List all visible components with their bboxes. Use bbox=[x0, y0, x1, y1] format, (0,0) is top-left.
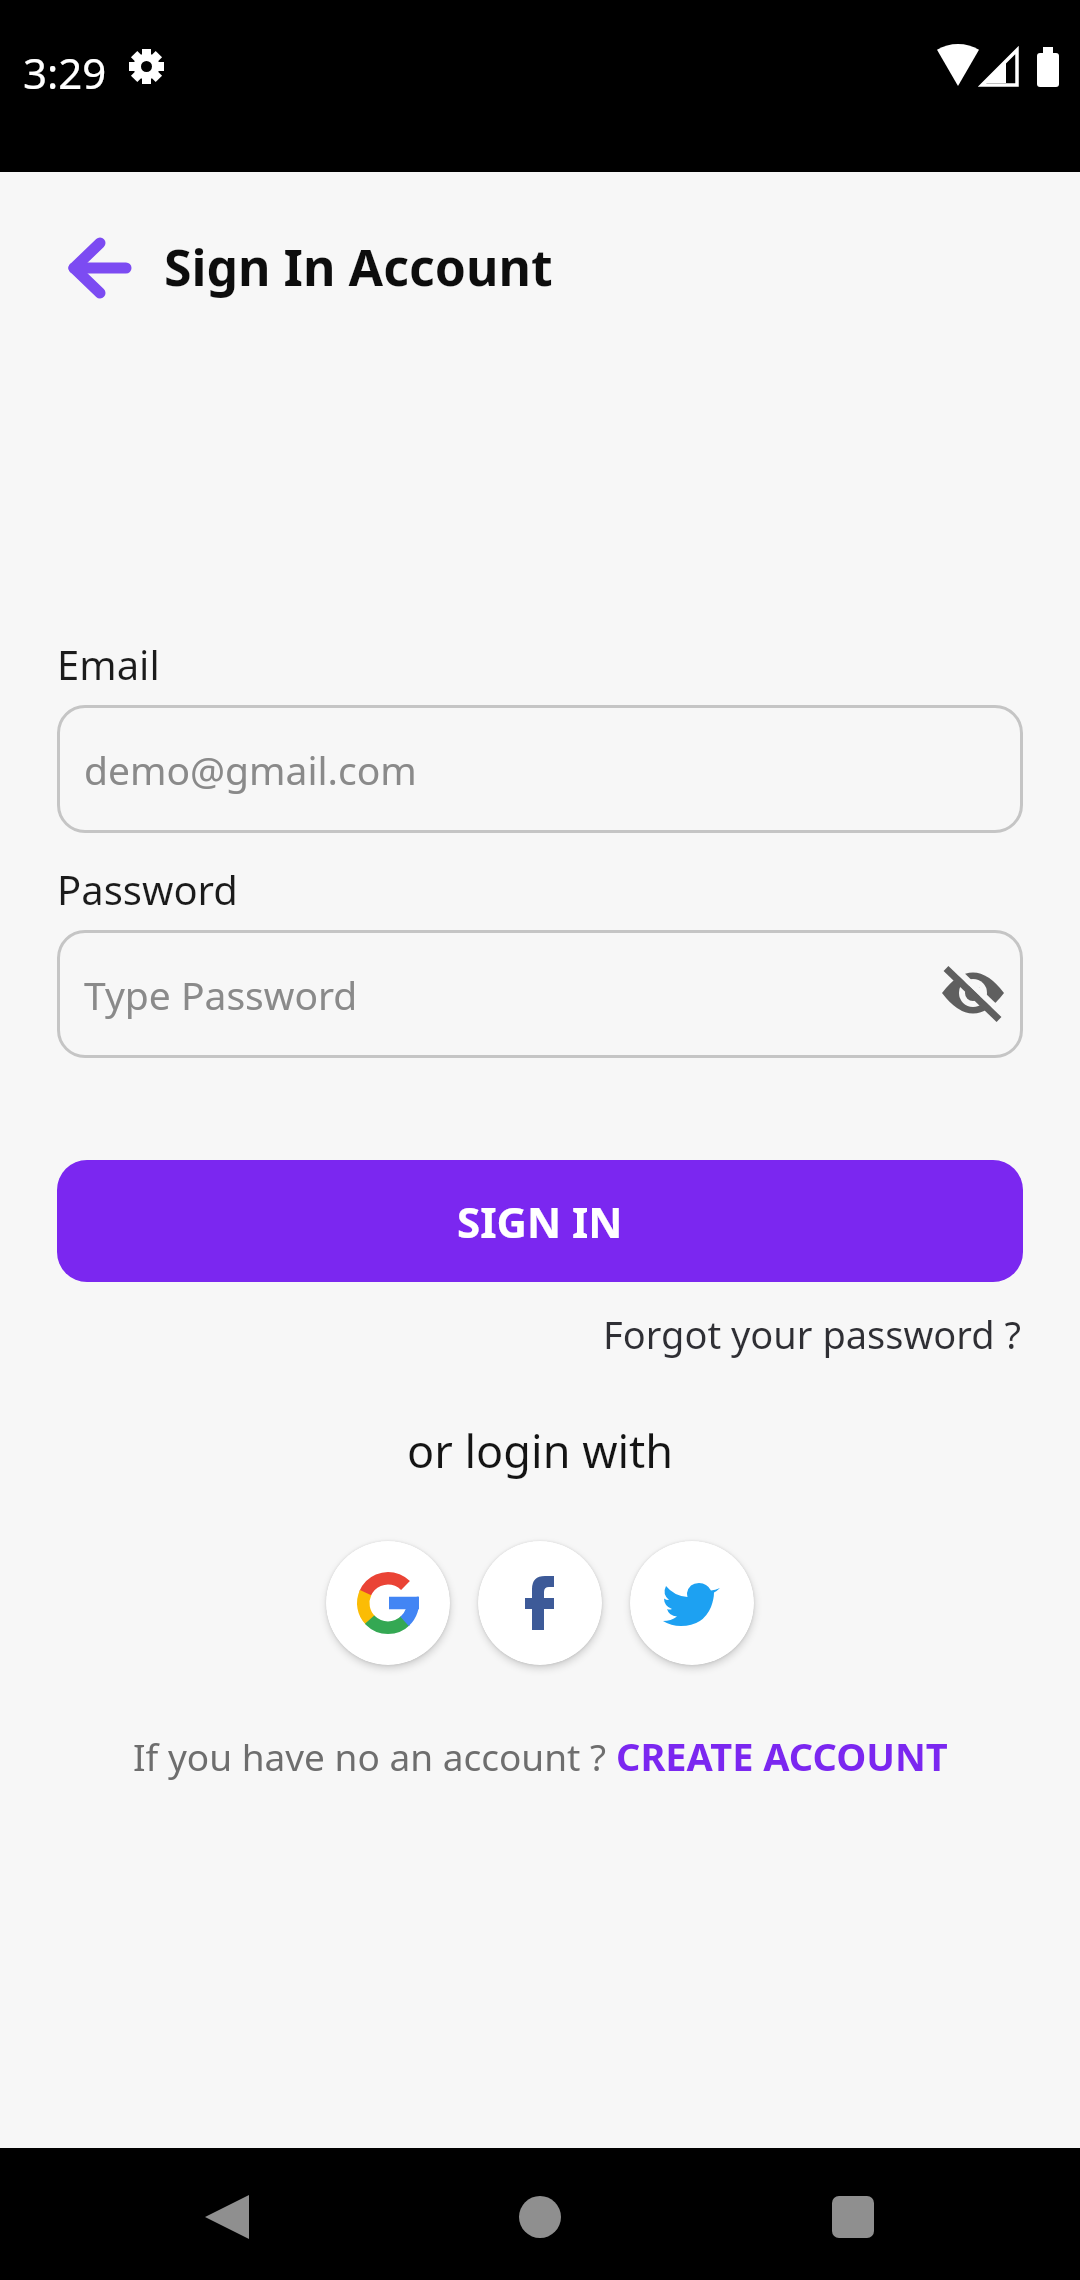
staticText: Password bbox=[57, 862, 238, 912]
staticText: 3:29 bbox=[23, 44, 107, 92]
button[interactable]: CREATE ACCOUNT bbox=[616, 1730, 948, 1782]
staticText: SIGN IN bbox=[457, 1193, 623, 1250]
button[interactable] bbox=[326, 1541, 450, 1665]
staticText: demo@gmail.com bbox=[84, 743, 417, 796]
button[interactable] bbox=[923, 930, 1023, 1058]
button[interactable]: demo@gmail.com bbox=[57, 705, 1023, 833]
button[interactable] bbox=[506, 2183, 574, 2251]
staticText: Email bbox=[57, 637, 160, 687]
button[interactable] bbox=[56, 225, 142, 311]
button[interactable]: SIGN IN bbox=[57, 1160, 1023, 1282]
staticText: If you have no an account ? bbox=[133, 1731, 616, 1781]
button[interactable] bbox=[630, 1541, 754, 1665]
button[interactable] bbox=[819, 2183, 887, 2251]
button[interactable] bbox=[478, 1541, 602, 1665]
button[interactable]: Forgot your password ? bbox=[603, 1308, 1022, 1360]
button[interactable] bbox=[193, 2183, 261, 2251]
staticText: Type Password bbox=[84, 968, 358, 1021]
button[interactable]: Type Password bbox=[57, 930, 1023, 1058]
staticText: Sign In Account bbox=[164, 233, 553, 301]
staticText: or login with bbox=[407, 1420, 674, 1480]
